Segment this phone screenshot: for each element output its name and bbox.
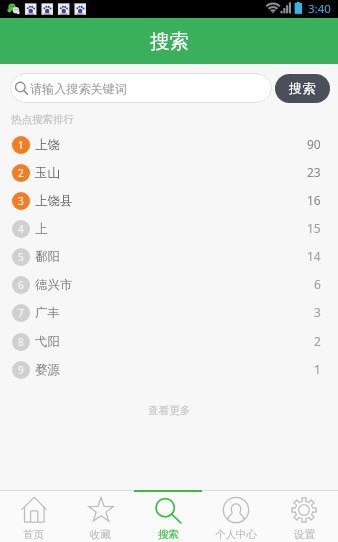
- button[interactable]: 6: [0, 271, 338, 299]
- staticText: 6: [314, 276, 321, 292]
- staticText: 收藏: [90, 528, 111, 541]
- button[interactable]: 4: [0, 215, 338, 243]
- staticText: 搜索: [158, 528, 179, 541]
- staticText: 2: [314, 333, 321, 349]
- staticText: 弋阳: [35, 334, 60, 350]
- staticText: 16: [307, 192, 321, 208]
- button[interactable]: 2: [0, 159, 338, 187]
- staticText: 搜索: [289, 80, 316, 97]
- staticText: 4: [18, 222, 24, 236]
- staticText: 请输入搜索关键词: [30, 81, 127, 96]
- staticText: 1: [18, 138, 24, 152]
- button[interactable]: 个人中心: [202, 491, 270, 542]
- staticText: 婺源: [35, 362, 60, 378]
- staticText: 9: [18, 363, 24, 377]
- staticText: 1: [314, 361, 321, 377]
- staticText: 设置: [294, 528, 315, 541]
- button[interactable]: 5: [0, 243, 338, 271]
- staticText: 德兴市: [35, 277, 73, 293]
- staticText: 玉山: [35, 165, 60, 181]
- button[interactable]: 查看更多: [0, 399, 338, 421]
- button[interactable]: 首页: [0, 491, 67, 542]
- staticText: 上: [35, 221, 48, 237]
- button[interactable]: 3: [0, 187, 338, 215]
- button[interactable]: 7: [0, 299, 338, 327]
- staticText: 2: [18, 166, 24, 180]
- staticText: 14: [307, 248, 321, 264]
- staticText: 鄱阳: [35, 249, 60, 265]
- button[interactable]: 搜索: [275, 74, 330, 103]
- staticText: 上饶县: [35, 193, 73, 209]
- staticText: 3:40: [308, 1, 331, 17]
- staticText: 3: [18, 194, 24, 208]
- button[interactable]: 请输入搜索关键词: [10, 73, 272, 103]
- staticText: 23: [307, 164, 321, 180]
- staticText: 上饶: [35, 137, 60, 153]
- button[interactable]: 搜索: [134, 491, 202, 542]
- staticText: 6: [18, 278, 24, 292]
- staticText: 搜索: [150, 29, 189, 54]
- staticText: 15: [307, 220, 321, 236]
- button[interactable]: 1: [0, 130, 338, 159]
- staticText: 5: [18, 250, 24, 264]
- staticText: 7: [18, 306, 24, 320]
- staticText: 查看更多: [148, 404, 191, 417]
- staticText: 首页: [23, 528, 44, 541]
- staticText: 3: [314, 304, 321, 320]
- staticText: 90: [307, 136, 321, 152]
- button[interactable]: 8: [0, 327, 338, 356]
- button[interactable]: 设置: [270, 491, 338, 542]
- staticText: 个人中心: [215, 528, 257, 541]
- staticText: 8: [18, 335, 24, 349]
- button[interactable]: 收藏: [67, 491, 134, 542]
- button[interactable]: 9: [0, 356, 338, 384]
- staticText: 广丰: [35, 305, 60, 321]
- staticText: 热点搜索排行: [11, 113, 74, 126]
